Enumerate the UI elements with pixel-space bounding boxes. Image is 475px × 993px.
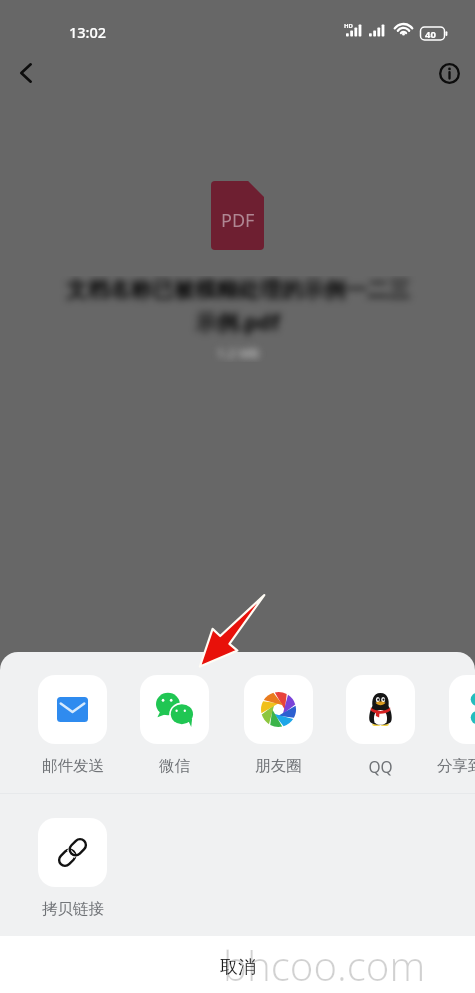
button[interactable]: 取消 (0, 936, 475, 993)
staticText: 示例.pdf (195, 307, 280, 336)
button[interactable]: Info (426, 50, 472, 96)
staticText: QQ (368, 756, 393, 777)
staticText: 13:02 (69, 22, 107, 42)
staticText: 取消 (220, 956, 256, 979)
staticText: 微信 (159, 756, 190, 776)
button[interactable]: 微信 (140, 675, 209, 776)
staticText: 1.2 MB (217, 344, 259, 362)
staticText: 分享到其他端 (437, 756, 475, 776)
button[interactable]: 分享到其他端 (449, 675, 475, 776)
staticText: 拷贝链接 (42, 899, 104, 919)
staticText: 邮件发送 (42, 756, 104, 776)
button[interactable]: 邮件发送 (38, 675, 107, 776)
button[interactable]: QQ (346, 675, 415, 777)
button[interactable]: 朋友圈 (244, 675, 313, 776)
staticText: PDF (221, 208, 255, 233)
staticText: 文档名称已被模糊处理的示例一二三 (66, 276, 410, 303)
staticText: HD (344, 22, 353, 30)
button[interactable]: 拷贝链接 (38, 818, 107, 919)
staticText: 朋友圈 (255, 756, 302, 776)
staticText: bhcoo.com (223, 938, 426, 992)
staticText: 40 (425, 28, 436, 41)
button[interactable]: Back (3, 50, 49, 96)
